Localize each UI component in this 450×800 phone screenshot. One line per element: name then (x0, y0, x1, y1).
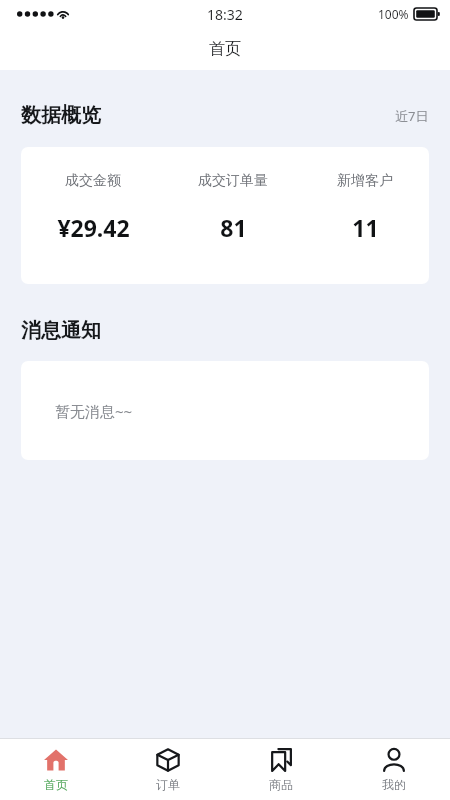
staticText: ¥29.42 (57, 212, 130, 243)
button[interactable]: 我的 (337, 739, 450, 800)
staticText: 81 (220, 212, 247, 243)
staticText: 商品 (269, 777, 293, 792)
button[interactable]: 近7日 (395, 107, 429, 125)
staticText: 消息通知 (21, 318, 101, 343)
button[interactable]: 订单 (112, 739, 224, 800)
staticText: 我的 (382, 777, 406, 792)
button[interactable]: 商品 (224, 739, 337, 800)
button[interactable]: 首页 (0, 739, 112, 800)
staticText: 近7日 (395, 107, 429, 125)
staticText: 18:32 (207, 5, 243, 24)
staticText: 暂无消息~~ (55, 401, 133, 421)
staticText: 订单 (156, 777, 180, 792)
staticText: 成交订单量 (198, 172, 268, 190)
button[interactable]: 暂无消息~~ (21, 361, 429, 460)
staticText: 成交金额 (65, 172, 121, 190)
staticText: 数据概览 (21, 103, 101, 128)
button[interactable]: 成交金额 (21, 147, 429, 284)
staticText: 100% (378, 6, 409, 22)
staticText: 首页 (44, 777, 68, 792)
staticText: 新增客户 (337, 172, 393, 190)
staticText: 首页 (209, 39, 241, 59)
staticText: 11 (352, 212, 379, 243)
